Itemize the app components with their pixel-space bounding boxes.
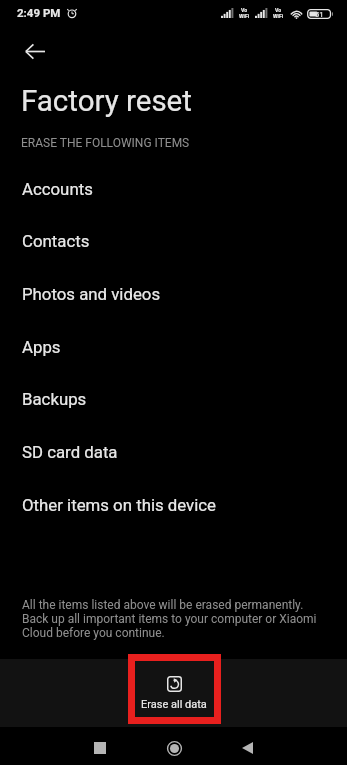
staticText: WiFi	[239, 13, 250, 19]
staticText: Other items on this device	[22, 495, 217, 515]
button[interactable]: Apps	[0, 320, 347, 373]
staticText: SD card data	[22, 442, 118, 462]
staticText: Apps	[22, 337, 61, 357]
staticText: Vo	[241, 7, 248, 13]
button[interactable]: Recents	[76, 729, 124, 765]
staticText: Erase all data	[141, 698, 207, 711]
button[interactable]: Home	[150, 729, 198, 765]
button[interactable]: SD card data	[0, 425, 347, 478]
staticText: 2:49 PM	[17, 6, 61, 19]
staticText: Contacts	[22, 231, 90, 251]
button[interactable]: Other items on this device	[0, 478, 347, 531]
staticText: WiFi	[273, 13, 284, 19]
staticText: Vo	[275, 7, 282, 13]
staticText: 51	[315, 10, 324, 19]
button[interactable]: Photos and videos	[0, 267, 347, 320]
button[interactable]: Contacts	[0, 214, 347, 267]
button[interactable]: Erase all data	[141, 676, 207, 711]
staticText: All the items listed above will be erase…	[22, 598, 317, 640]
button[interactable]: Backups	[0, 372, 347, 425]
button[interactable]: Back	[19, 35, 51, 67]
button[interactable]: Accounts	[0, 162, 347, 215]
staticText: Backups	[22, 389, 87, 409]
button[interactable]: Back	[223, 729, 271, 765]
staticText: Accounts	[22, 179, 93, 199]
staticText: Photos and videos	[22, 284, 161, 304]
staticText: Factory reset	[21, 84, 192, 119]
staticText: ERASE THE FOLLOWING ITEMS	[21, 136, 190, 150]
